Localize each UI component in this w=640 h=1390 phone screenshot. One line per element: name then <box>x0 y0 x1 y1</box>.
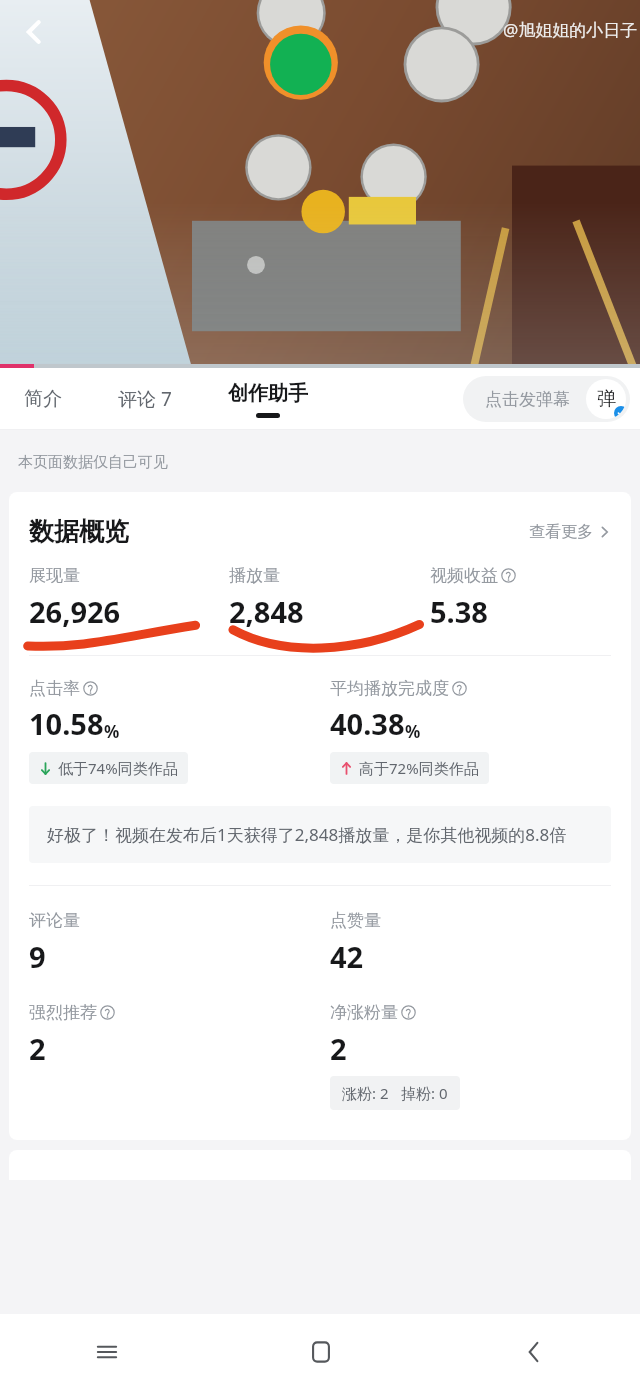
staticText: @旭姐姐的小日子 <box>503 18 638 41</box>
button[interactable]: Back <box>427 1314 640 1390</box>
staticText: 净涨粉量 <box>330 1002 398 1023</box>
staticText: 查看更多 <box>529 522 593 542</box>
staticText: 高于72%同类作品 <box>359 758 479 778</box>
staticText: 2 <box>330 1029 347 1068</box>
staticText: 9 <box>29 937 46 976</box>
staticText: 弹 <box>597 387 616 411</box>
staticText: 数据概览 <box>29 516 129 547</box>
staticText: 创作助手 <box>228 381 308 406</box>
staticText: 2 <box>29 1029 46 1068</box>
staticText: 点赞量 <box>330 910 381 931</box>
staticText: 掉粉: 0 <box>401 1083 448 1103</box>
button[interactable]: 简介 <box>18 379 68 419</box>
button[interactable]: 评论 7 <box>112 378 178 420</box>
button[interactable]: Recents <box>0 1314 214 1390</box>
staticText: % <box>405 720 421 743</box>
staticText: 评论 7 <box>118 386 172 412</box>
button[interactable]: 点击发弹幕 <box>463 376 630 422</box>
staticText: 点击发弹幕 <box>485 389 570 410</box>
staticText: 10.58 <box>29 704 104 743</box>
staticText: 简介 <box>24 387 62 411</box>
staticText: 26,926 <box>29 592 121 631</box>
staticText: 评论量 <box>29 910 80 931</box>
staticText: 低于74%同类作品 <box>58 758 178 778</box>
staticText: 本页面数据仅自己可见 <box>18 453 168 472</box>
button[interactable]: Back <box>8 6 60 58</box>
staticText: 强烈推荐 <box>29 1002 97 1023</box>
staticText: 涨粉: 2 <box>342 1083 389 1103</box>
staticText: 好极了！视频在发布后1天获得了2,848播放量，是你其他视频的8.8倍 <box>47 823 567 846</box>
staticText: 平均播放完成度 <box>330 678 449 699</box>
button[interactable]: 创作助手 <box>222 377 314 422</box>
staticText: 2,848 <box>229 592 304 631</box>
staticText: 视频收益 <box>430 565 498 586</box>
staticText: 42 <box>330 937 364 976</box>
staticText: % <box>104 720 120 743</box>
button[interactable]: 查看更多 <box>525 518 615 546</box>
button[interactable]: Home <box>214 1314 427 1390</box>
staticText: 5.38 <box>430 592 488 631</box>
staticText: 点击率 <box>29 678 80 699</box>
staticText: 40.38 <box>330 704 405 743</box>
staticText: 播放量 <box>229 565 280 586</box>
staticText: 展现量 <box>29 565 80 586</box>
